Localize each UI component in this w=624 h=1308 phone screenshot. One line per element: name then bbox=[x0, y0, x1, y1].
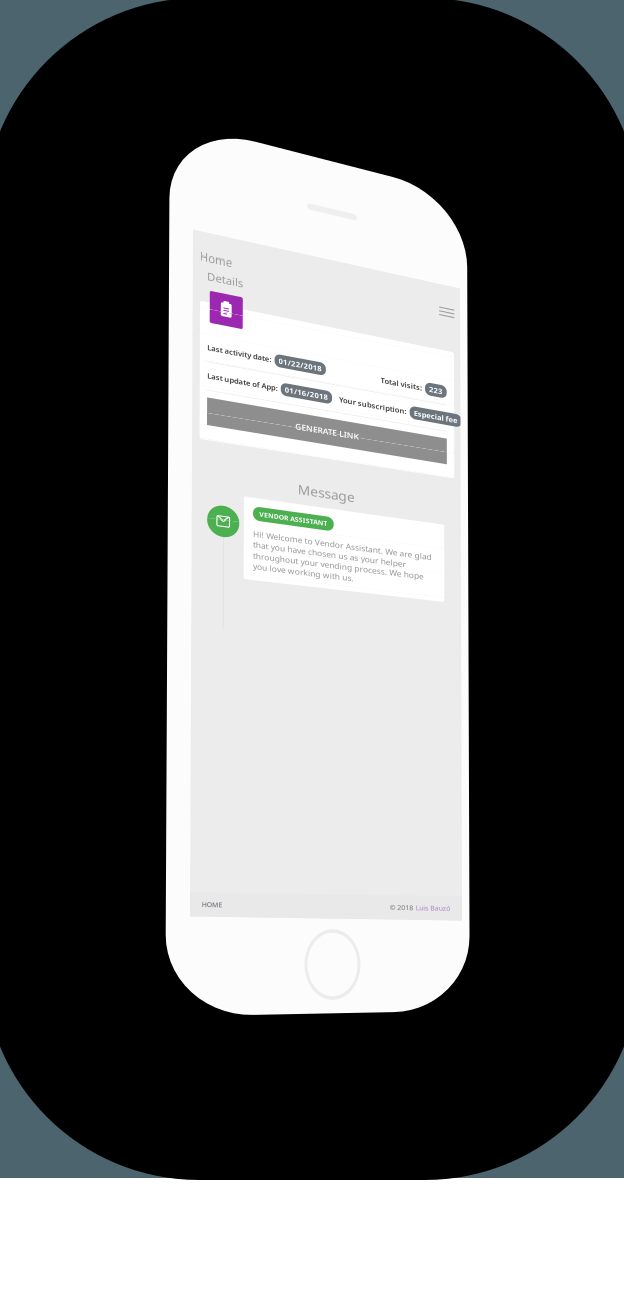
button[interactable]: Menu bbox=[433, 0, 470, 18]
button[interactable]: Luis Bauzó bbox=[390, 346, 450, 362]
button[interactable]: GENERATE LINK bbox=[26, 299, 446, 349]
staticText: Hi! Welcome to Vendor Assistant. We are … bbox=[107, 475, 419, 553]
button[interactable]: Luis Bauzó bbox=[390, 393, 450, 409]
button[interactable]: HOME bbox=[0, 1093, 56, 1109]
staticText: Hi! Welcome to Vendor Assistant. We are … bbox=[107, 288, 419, 366]
staticText: Especial fee bbox=[388, 205, 465, 223]
button[interactable]: Luis Bauzó bbox=[390, 206, 450, 222]
button[interactable]: Luis Bauzó bbox=[390, 300, 450, 315]
staticText: 223 bbox=[415, 201, 439, 219]
button[interactable]: HOME bbox=[0, 113, 56, 129]
staticText: Your subscription: bbox=[257, 158, 376, 176]
button[interactable]: GENERATE LINK bbox=[26, 206, 446, 256]
button[interactable]: HOME bbox=[0, 66, 56, 82]
button[interactable]: Luis Bauzó bbox=[390, 999, 450, 1015]
staticText: Luis Bauzó bbox=[390, 440, 450, 455]
button[interactable]: GENERATE LINK bbox=[26, 253, 446, 302]
button[interactable]: HOME bbox=[0, 1046, 56, 1062]
staticText: HOME bbox=[20, 66, 56, 82]
button[interactable]: GENERATE LINK bbox=[26, 19, 446, 69]
button[interactable]: GENERATE LINK bbox=[26, 66, 446, 116]
button[interactable]: GENERATE LINK bbox=[26, 113, 446, 162]
staticText: Your subscription: bbox=[257, 205, 376, 223]
staticText: Luis Bauzó bbox=[390, 206, 450, 222]
button[interactable]: Luis Bauzó bbox=[390, 579, 450, 595]
staticText: © 2018 bbox=[345, 906, 386, 922]
button[interactable]: Luis Bauzó bbox=[390, 906, 450, 922]
staticText: Message bbox=[185, 330, 285, 361]
button[interactable]: Home bbox=[0, 3, 69, 62]
button[interactable]: GENERATE LINK bbox=[26, 159, 446, 209]
button[interactable]: Luis Bauzó bbox=[390, 440, 450, 455]
button[interactable]: GENERATE LINK bbox=[26, 0, 446, 22]
staticText: VENDOR ASSISTANT bbox=[118, 393, 237, 409]
staticText: VENDOR ASSISTANT bbox=[118, 487, 237, 503]
button[interactable]: Luis Bauzó bbox=[390, 533, 450, 549]
